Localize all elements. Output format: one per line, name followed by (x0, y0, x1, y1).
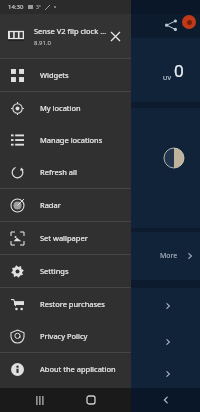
button[interactable]: Close (107, 28, 123, 44)
staticText: More (160, 251, 178, 261)
staticText: Sense V2 flip clock & w… (34, 26, 107, 36)
staticText: 3° (36, 4, 42, 11)
staticText: Refresh all (40, 167, 77, 177)
staticText: My location (40, 103, 81, 113)
staticText: Restore purchases (40, 299, 105, 309)
button[interactable]: Widgets (0, 59, 131, 91)
staticText: Widgets (40, 70, 69, 80)
button[interactable]: Radar (0, 189, 131, 221)
button[interactable]: About the application (0, 353, 131, 385)
button[interactable]: More (160, 251, 194, 261)
button[interactable]: Recent apps (30, 390, 50, 410)
button[interactable]: Share (161, 15, 181, 35)
staticText: 8.91.0 (34, 39, 51, 47)
staticText: Settings (40, 266, 69, 276)
button[interactable]: Record (182, 15, 196, 29)
staticText: Set wallpaper (40, 233, 88, 243)
button[interactable]: Back (156, 390, 176, 410)
button[interactable]: Refresh all (0, 156, 131, 188)
staticText: About the application (40, 364, 116, 374)
button[interactable]: My location (0, 92, 131, 124)
staticText: Manage locations (40, 135, 103, 145)
staticText: Radar (40, 200, 61, 210)
staticText: Privacy Policy (40, 331, 88, 341)
button[interactable]: Restore purchases (0, 288, 131, 320)
button[interactable]: Home (81, 390, 101, 410)
button[interactable]: Set wallpaper (0, 222, 131, 254)
staticText: UV (163, 74, 171, 82)
button[interactable]: Settings (0, 255, 131, 287)
staticText: 14:30 (8, 3, 24, 11)
staticText: 0 (174, 59, 184, 82)
button[interactable]: Privacy Policy (0, 320, 131, 352)
button[interactable]: Manage locations (0, 124, 131, 156)
